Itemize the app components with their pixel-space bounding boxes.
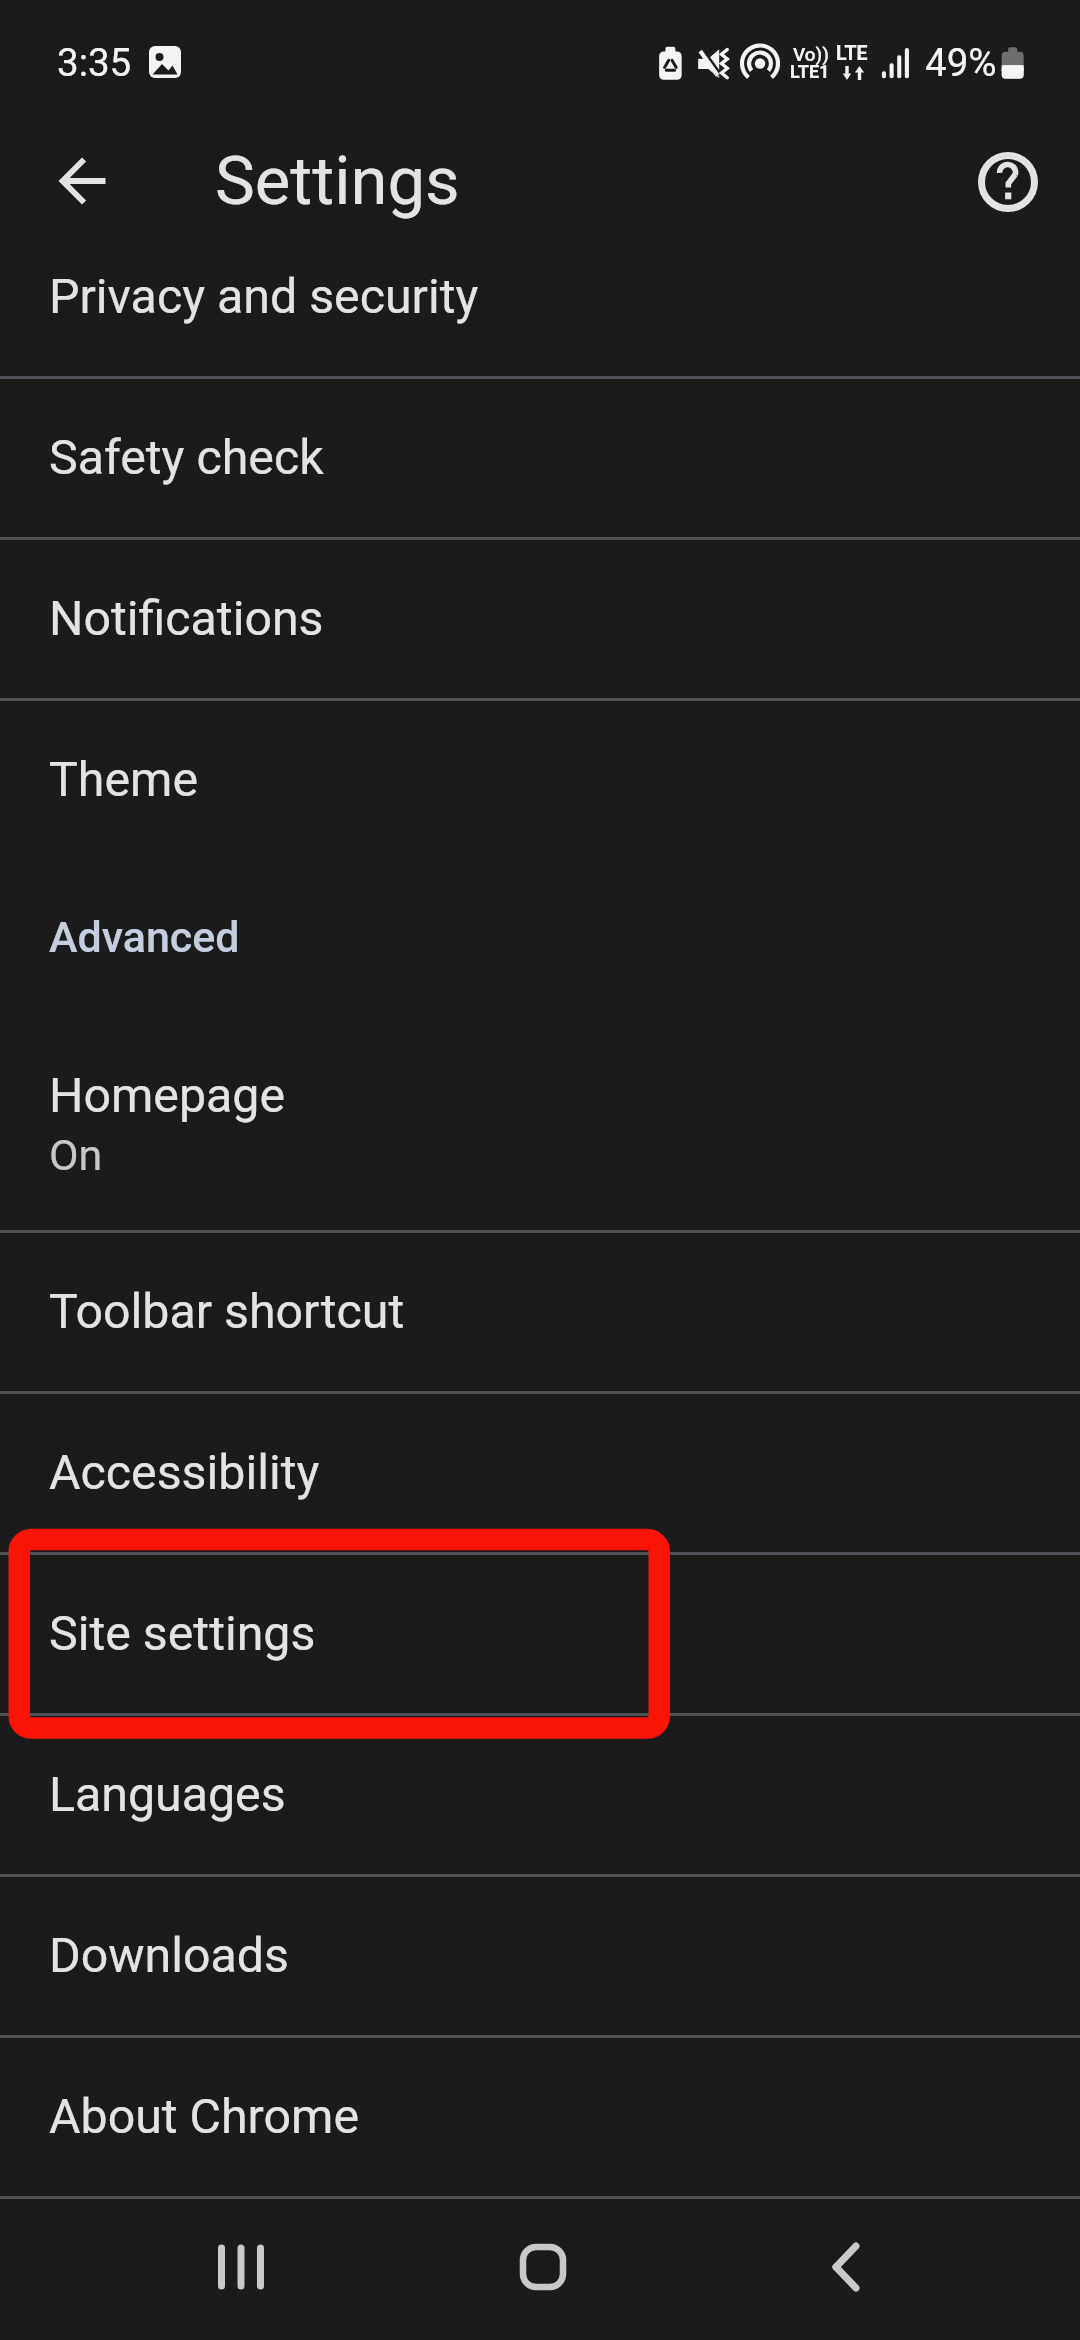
staticText: Site settings <box>49 1605 316 1662</box>
staticText: Notifications <box>49 590 324 647</box>
staticText: LTE <box>836 42 868 65</box>
staticText: About Chrome <box>49 2088 360 2145</box>
staticText: Safety check <box>49 429 324 486</box>
staticText: Accessibility <box>49 1444 320 1501</box>
button[interactable]: Site settings <box>0 1554 1080 1712</box>
staticText: Settings <box>215 142 460 221</box>
button[interactable]: Home <box>507 2231 579 2303</box>
button[interactable]: Theme <box>0 700 1080 858</box>
staticText: 3:35 <box>57 40 132 85</box>
button[interactable]: Privacy and security <box>0 217 1080 375</box>
button[interactable]: Accessibility <box>0 1393 1080 1551</box>
staticText: Advanced <box>49 912 240 962</box>
staticText: 49% <box>925 40 997 85</box>
staticText: On <box>49 1130 103 1180</box>
button[interactable]: Back <box>810 2231 882 2303</box>
button[interactable]: Notifications <box>0 539 1080 697</box>
staticText: Vo)) <box>793 43 829 65</box>
button[interactable]: Languages <box>0 1715 1080 1873</box>
staticText: Toolbar shortcut <box>49 1283 405 1340</box>
staticText: Privacy and security <box>49 268 479 325</box>
button[interactable]: Downloads <box>0 1876 1080 2034</box>
staticText: Theme <box>49 751 198 808</box>
button[interactable]: Help <box>974 148 1042 216</box>
button[interactable]: Back <box>48 147 116 215</box>
button[interactable]: Safety check <box>0 378 1080 536</box>
staticText: Languages <box>49 1766 286 1823</box>
staticText: Downloads <box>49 1927 289 1984</box>
button[interactable]: Homepage <box>0 1043 1080 1231</box>
button[interactable]: About Chrome <box>0 2037 1080 2195</box>
button[interactable]: Recents <box>205 2231 277 2303</box>
staticText: Homepage <box>49 1067 286 1124</box>
button[interactable]: Toolbar shortcut <box>0 1232 1080 1390</box>
staticText: LTE1 <box>790 61 830 82</box>
